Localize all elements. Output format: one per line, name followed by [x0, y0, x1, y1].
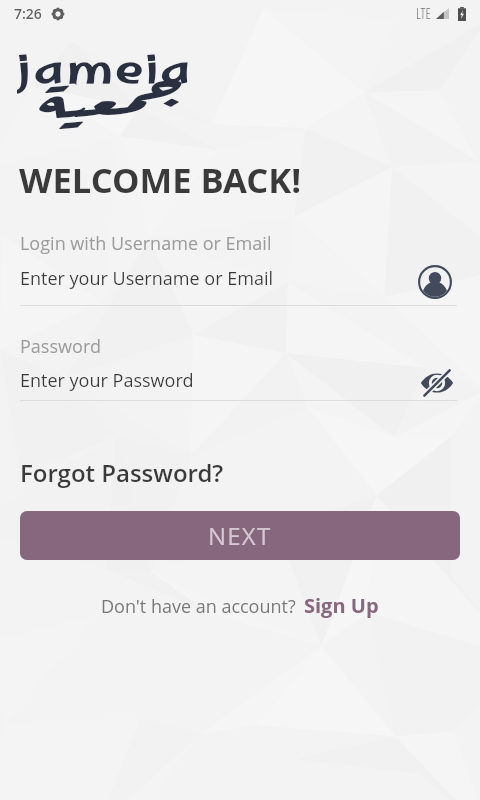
staticText: Sign Up	[304, 592, 379, 619]
button[interactable]: Forgot Password?	[20, 456, 224, 489]
staticText: 7:26	[14, 4, 42, 23]
button[interactable]: Account	[416, 263, 453, 300]
button[interactable]: Sign Up	[304, 592, 379, 619]
staticText: WELCOME BACK!	[19, 156, 302, 203]
staticText: Don't have an account?	[101, 594, 296, 619]
button[interactable]: Show password	[419, 365, 455, 401]
staticText: جمعية	[40, 64, 185, 128]
staticText: LTE	[416, 4, 431, 23]
staticText: Enter your Username or Email	[20, 266, 274, 291]
staticText: NEXT	[208, 519, 272, 552]
staticText: jameia	[17, 36, 194, 106]
staticText: Forgot Password?	[20, 456, 224, 489]
staticText: Enter your Password	[20, 368, 194, 393]
staticText: Login with Username or Email	[20, 231, 272, 256]
button[interactable]: NEXT	[20, 511, 460, 560]
staticText: Password	[20, 334, 101, 359]
